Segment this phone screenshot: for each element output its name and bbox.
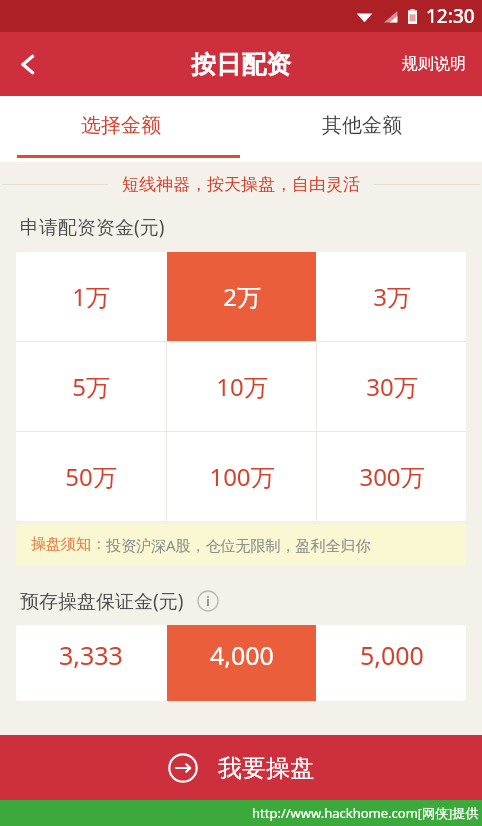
staticText: 100万 — [209, 460, 275, 493]
staticText: 5万 — [72, 370, 110, 403]
button[interactable]: 100万 — [167, 432, 316, 521]
staticText: 2万 — [223, 280, 261, 313]
staticText: 规则说明 — [402, 54, 466, 74]
staticText: 3,333 — [59, 638, 123, 672]
staticText: http://www.hackhome.com[网侠]提供 — [252, 804, 479, 822]
button[interactable]: Back — [0, 32, 56, 96]
staticText: 4,000 — [210, 638, 274, 672]
button[interactable]: 4,000 — [167, 625, 316, 701]
staticText: 我要操盘 — [218, 753, 314, 783]
staticText: 申请配资资金(元) — [20, 214, 165, 240]
staticText: 3万 — [373, 280, 411, 313]
button[interactable]: 1万 — [16, 252, 166, 341]
button[interactable]: 选择金额 — [0, 96, 241, 162]
staticText: 选择金额 — [81, 113, 161, 138]
staticText: 1万 — [72, 280, 110, 313]
button[interactable]: 3万 — [317, 252, 466, 341]
staticText: 短线神器，按天操盘，自由灵活 — [122, 174, 360, 195]
staticText: 预存操盘保证金(元) — [20, 588, 184, 614]
staticText: i — [206, 592, 210, 610]
button[interactable]: 2万 — [167, 252, 316, 341]
staticText: 10万 — [216, 370, 268, 403]
button[interactable]: 30万 — [317, 342, 466, 431]
button[interactable]: 300万 — [317, 432, 466, 521]
button[interactable]: 规则说明 — [386, 32, 482, 96]
staticText: 12:30 — [426, 3, 475, 29]
staticText: 其他金额 — [322, 113, 402, 138]
button[interactable]: 5,000 — [317, 625, 466, 701]
button[interactable]: 50万 — [16, 432, 166, 521]
button[interactable]: 我要操盘 — [0, 735, 482, 800]
staticText: 50万 — [65, 460, 117, 493]
button[interactable]: 3,333 — [16, 625, 166, 701]
button[interactable]: 5万 — [16, 342, 166, 431]
button[interactable]: Info — [197, 590, 219, 612]
staticText: 300万 — [359, 460, 425, 493]
button[interactable]: 10万 — [167, 342, 316, 431]
staticText: 操盘须知： — [31, 535, 106, 554]
staticText: 投资沪深A股，仓位无限制，盈利全归你 — [106, 535, 371, 555]
staticText: 5,000 — [360, 638, 424, 672]
button[interactable]: 其他金额 — [241, 96, 482, 162]
staticText: 30万 — [366, 370, 418, 403]
staticText: 按日配资 — [191, 49, 291, 80]
